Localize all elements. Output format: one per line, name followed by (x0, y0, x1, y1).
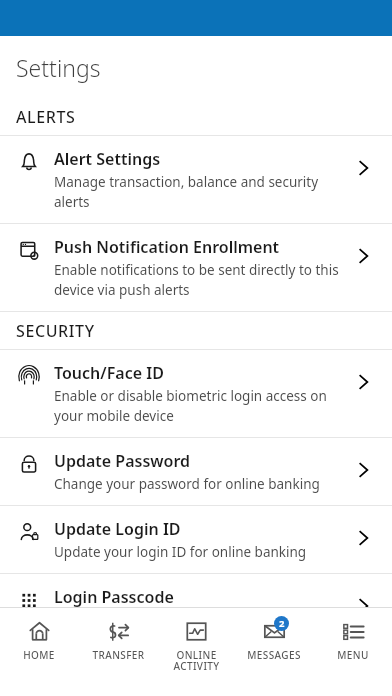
button[interactable]: Push Notification Enrollment (0, 224, 392, 311)
button[interactable]: Update Password (0, 438, 392, 505)
button[interactable]: MENU (314, 608, 392, 662)
staticText: Enable or disable biometric login access… (54, 387, 340, 425)
staticText: Update Password (54, 450, 191, 472)
button[interactable]: TRANSFER (79, 608, 157, 662)
button[interactable]: HOME (0, 608, 78, 662)
staticText: ONLINE ACTIVITY (173, 648, 220, 673)
button[interactable]: 2 (235, 608, 313, 662)
button[interactable]: Alert Settings (0, 136, 392, 223)
staticText: TRANSFER (92, 648, 145, 662)
staticText: Enable notifications to be sent directly… (54, 261, 340, 299)
staticText: Login Passcode (54, 586, 174, 607)
staticText: HOME (23, 648, 55, 662)
staticText: Settings (16, 52, 101, 83)
staticText: 2 (279, 617, 285, 630)
staticText: MENU (337, 648, 369, 662)
button[interactable]: Update Login ID (0, 506, 392, 573)
staticText: Update your login ID for online banking (54, 543, 307, 561)
staticText: Update Login ID (54, 518, 181, 540)
button[interactable]: Touch/Face ID (0, 350, 392, 437)
staticText: SECURITY (16, 320, 95, 342)
staticText: Alert Settings (54, 148, 161, 170)
staticText: Manage transaction, balance and security… (54, 173, 340, 211)
staticText: MESSAGES (247, 648, 301, 662)
staticText: Touch/Face ID (54, 362, 164, 384)
button[interactable]: Login Passcode (0, 574, 392, 607)
staticText: Change your password for online banking (54, 475, 320, 493)
button[interactable]: ONLINE ACTIVITY (157, 608, 235, 673)
staticText: Push Notification Enrollment (54, 236, 280, 258)
staticText: ALERTS (16, 106, 76, 128)
